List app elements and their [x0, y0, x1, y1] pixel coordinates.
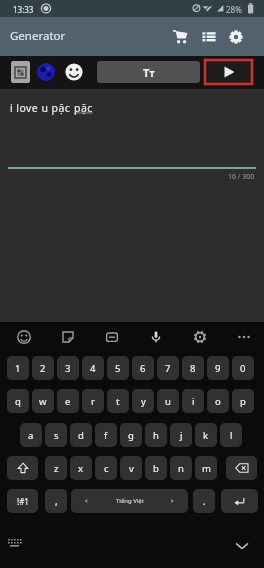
button[interactable]: t — [107, 389, 129, 413]
button[interactable]: Tiếng Việt — [71, 489, 188, 513]
staticText: c — [104, 462, 109, 475]
button[interactable] — [60, 329, 76, 345]
button[interactable] — [192, 329, 208, 345]
button[interactable]: 8 — [182, 356, 204, 380]
button[interactable]: a — [20, 423, 42, 447]
button[interactable] — [6, 536, 24, 550]
staticText: k — [203, 429, 209, 442]
button[interactable]: r — [82, 389, 104, 413]
button[interactable] — [221, 489, 258, 513]
button[interactable]: m — [195, 456, 217, 480]
staticText: Generator — [10, 28, 66, 44]
staticText: s — [54, 429, 59, 442]
staticText: o — [215, 395, 221, 408]
button[interactable] — [148, 329, 164, 345]
button[interactable]: z — [45, 456, 67, 480]
button[interactable]: j — [170, 423, 192, 447]
staticText: Tᴛ — [143, 65, 155, 80]
button[interactable] — [205, 60, 252, 84]
button[interactable]: s — [45, 423, 67, 447]
staticText: 1 — [15, 362, 21, 375]
staticText: u — [165, 395, 171, 408]
button[interactable]: 5 — [107, 356, 129, 380]
button[interactable] — [232, 538, 252, 554]
staticText: . — [203, 494, 206, 508]
staticText: v — [129, 462, 134, 475]
button[interactable]: 7 — [157, 356, 179, 380]
staticText: q — [15, 395, 21, 408]
button[interactable] — [7, 456, 38, 480]
button[interactable] — [236, 329, 252, 345]
button[interactable]: n — [170, 456, 192, 480]
button[interactable]: f — [95, 423, 117, 447]
staticText: 9 — [215, 362, 221, 375]
button[interactable]: o — [207, 389, 229, 413]
button[interactable] — [225, 26, 247, 48]
button[interactable]: Tᴛ — [97, 61, 200, 83]
button[interactable] — [11, 61, 30, 83]
button[interactable]: l — [220, 423, 242, 447]
staticText: 28% — [226, 4, 242, 15]
button[interactable]: k — [195, 423, 217, 447]
staticText: h — [153, 429, 159, 442]
button[interactable] — [104, 329, 120, 345]
staticText: 3 — [65, 362, 71, 375]
staticText: 13:33 — [13, 4, 34, 15]
button[interactable]: e — [57, 389, 79, 413]
button[interactable]: p — [232, 389, 254, 413]
staticText: g — [128, 429, 134, 442]
button[interactable]: q — [7, 389, 29, 413]
staticText: , — [55, 494, 58, 508]
button[interactable]: 3 — [57, 356, 79, 380]
button[interactable] — [36, 61, 58, 83]
button[interactable] — [198, 26, 220, 48]
button[interactable]: i — [182, 389, 204, 413]
button[interactable]: 1 — [7, 356, 29, 380]
button[interactable]: x — [70, 456, 92, 480]
button[interactable]: 6 — [132, 356, 154, 380]
staticText: w — [39, 395, 47, 408]
button[interactable]: . — [193, 489, 215, 513]
staticText: j — [180, 429, 183, 442]
button[interactable]: y — [132, 389, 154, 413]
staticText: 5 — [115, 362, 121, 375]
button[interactable]: w — [32, 389, 54, 413]
button[interactable]: b — [145, 456, 167, 480]
button[interactable]: 2 — [32, 356, 54, 380]
button[interactable]: v — [120, 456, 142, 480]
staticText: Tiếng Việt — [116, 497, 144, 505]
staticText: r — [91, 395, 95, 408]
button[interactable]: d — [70, 423, 92, 447]
button[interactable]: 4 — [82, 356, 104, 380]
staticText: n — [178, 462, 184, 475]
staticText: m — [202, 462, 211, 475]
button[interactable] — [226, 456, 257, 480]
staticText: 4 — [90, 362, 96, 375]
staticText: p — [240, 395, 246, 408]
button[interactable]: 9 — [207, 356, 229, 380]
button[interactable] — [64, 61, 86, 83]
button[interactable]: c — [95, 456, 117, 480]
button[interactable]: u — [157, 389, 179, 413]
staticText: a — [28, 429, 34, 442]
button[interactable] — [170, 26, 192, 48]
button[interactable] — [16, 329, 32, 345]
staticText: 2 — [40, 362, 46, 375]
staticText: 16 / 300 — [228, 172, 255, 182]
staticText: b — [153, 462, 159, 475]
staticText: pặc — [74, 101, 93, 115]
button[interactable]: !#1 — [7, 489, 38, 513]
button[interactable]: 0 — [232, 356, 254, 380]
staticText: 0 — [240, 362, 246, 375]
staticText: 6 — [140, 362, 146, 375]
button[interactable]: , — [45, 489, 67, 513]
staticText: x — [78, 462, 84, 475]
staticText: y — [141, 395, 146, 408]
staticText: 8 — [190, 362, 196, 375]
staticText: d — [78, 429, 84, 442]
staticText: z — [54, 462, 59, 475]
button[interactable]: h — [145, 423, 167, 447]
button[interactable]: g — [120, 423, 142, 447]
staticText: f — [104, 429, 108, 442]
staticText: t — [116, 395, 120, 408]
